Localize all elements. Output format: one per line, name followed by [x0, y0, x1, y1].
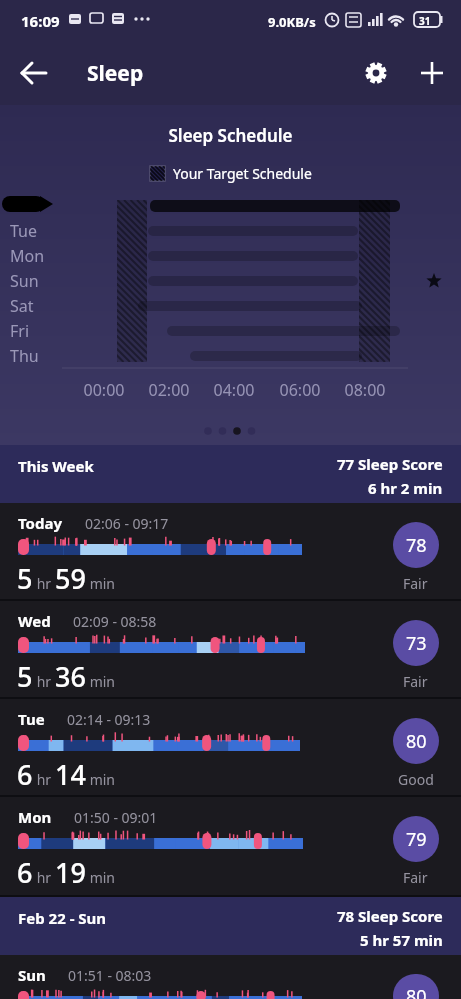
staticText: hr [33, 770, 55, 789]
staticText: Fri [10, 320, 30, 342]
staticText: Tue [10, 220, 38, 242]
button[interactable] [353, 50, 398, 95]
staticText: Your Target Schedule [173, 164, 312, 183]
staticText: Sat [10, 295, 34, 317]
staticText: 00:00 [74, 379, 134, 401]
button[interactable]: Wed [0, 601, 461, 699]
staticText: 31 [419, 14, 431, 28]
staticText: 19 [55, 854, 86, 891]
staticText: 04:00 [204, 379, 264, 401]
button[interactable]: Sun [0, 955, 461, 999]
staticText: 6 [17, 756, 33, 793]
staticText: 5 hr 57 min [360, 930, 443, 950]
staticText: Thu [10, 345, 39, 367]
staticText: 78 Sleep Score [337, 906, 443, 926]
staticText: Fair [403, 672, 428, 691]
staticText: min [86, 574, 115, 593]
staticText: Mon [18, 807, 52, 827]
staticText: 6 [17, 854, 33, 891]
staticText: min [86, 672, 115, 691]
staticText: 02:06 - 09:17 [85, 514, 169, 533]
staticText: Sun [10, 270, 39, 292]
staticText: Fair [403, 574, 428, 593]
staticText: 36 [55, 658, 86, 695]
staticText: Wed [18, 611, 51, 631]
staticText: Sun [18, 965, 46, 985]
staticText: min [86, 868, 115, 887]
staticText: 06:00 [270, 379, 330, 401]
staticText: Fair [403, 868, 428, 887]
staticText: hr [33, 868, 55, 887]
staticText: 80 [406, 984, 427, 999]
staticText: Sleep [87, 59, 144, 88]
staticText: 79 [406, 827, 427, 852]
staticText: 5 [17, 560, 33, 597]
button[interactable] [10, 49, 56, 95]
button[interactable] [410, 50, 455, 95]
staticText: 6 hr 2 min [368, 478, 443, 498]
staticText: min [86, 770, 115, 789]
button[interactable]: Mon [0, 797, 461, 897]
staticText: 9.0KB/s [268, 13, 316, 31]
staticText: 14 [55, 756, 86, 793]
staticText: 02:00 [139, 379, 199, 401]
button[interactable]: Today [0, 503, 461, 601]
staticText: Sleep Schedule [0, 124, 461, 147]
staticText: This Week [18, 456, 94, 476]
staticText: Feb 22 - Sun [18, 908, 107, 928]
staticText: Good [398, 770, 434, 789]
staticText: 02:09 - 08:58 [73, 612, 157, 631]
button[interactable]: Tue [0, 699, 461, 797]
staticText: Today [18, 513, 63, 533]
staticText: 59 [55, 560, 86, 597]
staticText: 08:00 [335, 379, 395, 401]
staticText: 78 [406, 533, 427, 558]
staticText: 5 [17, 658, 33, 695]
staticText: 01:51 - 08:03 [68, 966, 152, 985]
staticText: 77 Sleep Score [337, 454, 443, 474]
staticText: 02:14 - 09:13 [67, 710, 151, 729]
staticText: Tue [18, 709, 45, 729]
staticText: hr [33, 672, 55, 691]
staticText: 73 [406, 631, 427, 656]
staticText: hr [33, 574, 55, 593]
staticText: 16:09 [21, 11, 60, 31]
staticText: 80 [406, 729, 427, 754]
staticText: 01:50 - 09:01 [74, 808, 158, 827]
staticText: Mon [10, 245, 45, 267]
